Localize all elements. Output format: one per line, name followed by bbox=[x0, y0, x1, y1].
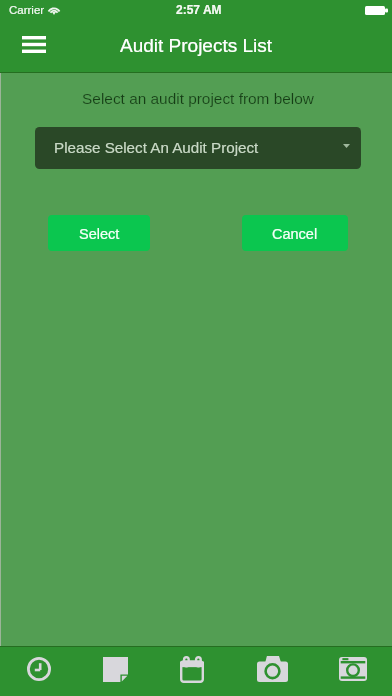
staticText: Select bbox=[79, 226, 120, 242]
button[interactable]: Gallery bbox=[314, 646, 392, 696]
staticText: 2:57 AM bbox=[176, 3, 222, 16]
button[interactable]: Recent bbox=[0, 646, 78, 696]
staticText: Please Select An Audit Project bbox=[54, 139, 259, 156]
staticText: Carrier bbox=[9, 4, 45, 17]
staticText: Audit Projects List bbox=[120, 35, 273, 56]
button[interactable]: Calendar bbox=[153, 646, 231, 696]
button[interactable]: Notes bbox=[76, 646, 154, 696]
button[interactable]: Please Select An Audit Project bbox=[35, 127, 361, 169]
staticText: Cancel bbox=[272, 226, 318, 242]
button[interactable]: Menu bbox=[10, 20, 58, 68]
button[interactable]: Select bbox=[48, 215, 150, 251]
button[interactable]: Cancel bbox=[242, 215, 348, 251]
button[interactable]: Camera bbox=[233, 646, 311, 696]
staticText: Select an audit project from below bbox=[2, 90, 392, 107]
